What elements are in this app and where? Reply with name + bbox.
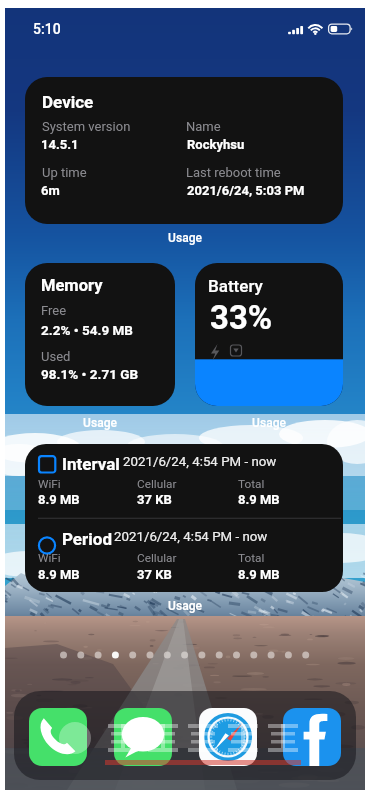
staticText: 2021/6/24, 5:03 PM — [187, 183, 305, 198]
staticText: Usage — [115, 599, 255, 614]
staticText: Rockyhsu — [187, 137, 245, 152]
button[interactable]: Memory — [25, 263, 175, 406]
button[interactable]: Messages — [114, 708, 172, 766]
staticText: Usage — [30, 416, 170, 431]
staticText: WiFi — [38, 477, 61, 491]
staticText: Memory — [41, 276, 103, 295]
staticText: 5:10 — [33, 21, 61, 37]
staticText: Cellular — [137, 477, 177, 491]
staticText: 37 KB — [137, 492, 172, 507]
staticText: 2021/6/24, 4:54 PM - now — [114, 529, 268, 545]
staticText: 8.9 MB — [238, 492, 280, 507]
button[interactable]: Battery — [195, 263, 343, 406]
staticText: Up time — [42, 165, 87, 180]
staticText: 8.9 MB — [38, 492, 80, 507]
button[interactable]: Facebook — [283, 708, 341, 766]
staticText: Device — [42, 92, 94, 112]
staticText: Cellular — [137, 551, 177, 565]
staticText: 8.9 MB — [38, 567, 80, 582]
staticText: Usage — [199, 416, 339, 431]
staticText: WiFi — [38, 551, 61, 565]
staticText: Interval — [62, 454, 120, 474]
staticText: 6m — [41, 183, 60, 198]
staticText: 98.1% • 2.71 GB — [41, 366, 139, 382]
button[interactable]: Interval — [25, 444, 343, 592]
staticText: 2.2% • 54.9 MB — [41, 322, 133, 338]
staticText: System version — [42, 119, 131, 134]
button[interactable]: Phone — [29, 708, 87, 766]
staticText: 14.5.1 — [41, 137, 79, 152]
staticText: Total — [238, 551, 265, 565]
button[interactable]: Safari — [199, 708, 257, 766]
staticText: Last reboot time — [186, 165, 281, 180]
staticText: Total — [238, 477, 265, 491]
staticText: 2021/6/24, 4:54 PM - now — [123, 454, 277, 470]
staticText: 33% — [210, 298, 273, 337]
staticText: Used — [41, 349, 71, 364]
staticText: Name — [186, 119, 221, 134]
staticText: 37 KB — [137, 567, 172, 582]
staticText: Free — [41, 303, 67, 318]
staticText: Battery — [208, 276, 263, 296]
staticText: 8.9 MB — [238, 567, 280, 582]
staticText: Period — [62, 529, 112, 549]
button[interactable]: Device — [25, 77, 343, 224]
staticText: Usage — [115, 231, 255, 246]
